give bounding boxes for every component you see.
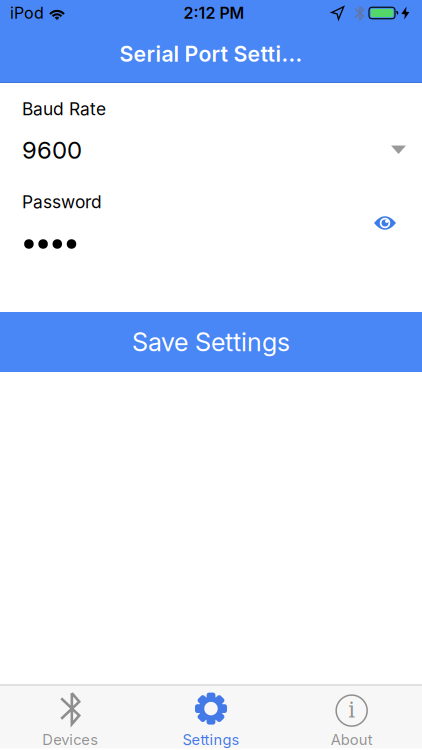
- staticText: Password: [22, 192, 102, 212]
- staticText: Save Settings: [132, 327, 290, 357]
- button[interactable]: Devices: [0, 686, 141, 748]
- button[interactable]: Baud rate: [22, 128, 406, 172]
- staticText: About: [331, 731, 373, 748]
- staticText: 2:12 PM: [183, 4, 244, 22]
- staticText: Serial Port Setti...: [119, 41, 302, 67]
- staticText: iPod: [10, 4, 44, 22]
- staticText: 9600: [22, 136, 82, 164]
- button[interactable]: Settings: [141, 686, 281, 748]
- staticText: i: [348, 698, 355, 722]
- button[interactable]: About: [281, 686, 422, 748]
- staticText: Baud Rate: [22, 99, 106, 119]
- staticText: Devices: [42, 731, 98, 748]
- staticText: Settings: [182, 731, 239, 748]
- button[interactable]: Show password: [368, 209, 402, 237]
- button[interactable]: Save Settings: [0, 312, 422, 372]
